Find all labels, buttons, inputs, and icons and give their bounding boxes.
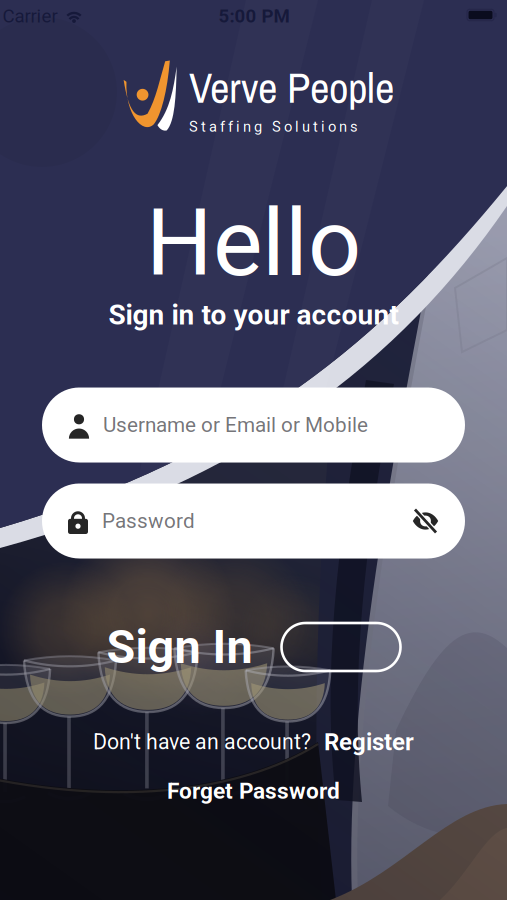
staticText: Carrier [2,5,57,27]
staticText: Username or Email or Mobile [103,413,368,437]
staticText: Hello [146,188,361,298]
staticText: 5:00 PM [218,5,289,27]
staticText: Password [102,509,195,533]
staticText: Forget Password [167,778,340,804]
button[interactable]: Username or Email or Mobile [42,387,465,462]
button[interactable]: Register [324,728,414,756]
staticText: Sign In [106,620,252,674]
button[interactable]: Sign In [106,614,400,680]
staticText: Staffing Solutions [189,118,358,135]
staticText: Register [324,728,414,756]
button[interactable]: Forget Password [167,778,340,804]
button[interactable]: Password [42,483,465,558]
staticText: Sign in to your account [108,299,398,331]
staticText: Don't have an account? [93,729,311,754]
staticText: Verve People [189,59,394,116]
